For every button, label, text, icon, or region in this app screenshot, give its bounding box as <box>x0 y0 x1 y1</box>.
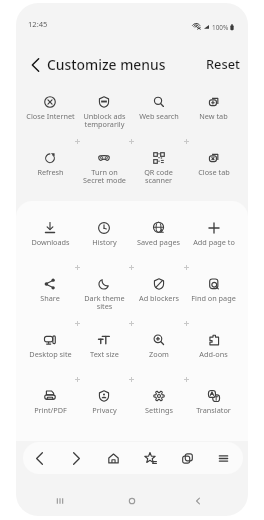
staticText: 12:45 <box>28 19 48 29</box>
staticText: QR code scanner <box>144 167 173 185</box>
button[interactable]: Settings <box>131 383 186 439</box>
staticText: Privacy <box>92 405 117 415</box>
button[interactable]: Find on page <box>186 271 241 327</box>
staticText: Downloads <box>31 237 70 247</box>
staticText: Saved pages <box>137 237 180 247</box>
staticText: Share <box>40 293 60 303</box>
button[interactable]: Downloads <box>23 215 77 271</box>
button[interactable]: Ad blockers <box>131 271 186 327</box>
staticText: Text size <box>90 349 119 359</box>
staticText: Reset <box>206 55 240 72</box>
button[interactable]: Add page to <box>186 215 241 271</box>
button[interactable]: Zoom <box>131 327 186 383</box>
button[interactable]: Saved pages <box>131 215 186 271</box>
staticText: Refresh <box>37 167 64 177</box>
button[interactable]: Web search <box>131 89 186 145</box>
button[interactable]: History <box>77 215 131 271</box>
staticText: Unblock ads temporarily <box>83 111 126 129</box>
staticText: 100% <box>212 23 229 32</box>
staticText: Find on page <box>191 293 236 303</box>
button[interactable]: New tab <box>186 89 241 145</box>
button[interactable]: Add-ons <box>186 327 241 383</box>
staticText: Customize menus <box>47 55 166 74</box>
button[interactable]: Unblock ads temporarily <box>77 89 131 145</box>
button[interactable]: Dark theme sites <box>77 271 131 327</box>
button[interactable]: Privacy <box>77 383 131 439</box>
staticText: Print/PDF <box>34 405 67 415</box>
button[interactable]: QR code scanner <box>131 145 186 201</box>
staticText: New tab <box>199 111 228 121</box>
button[interactable]: Print/PDF <box>23 383 77 439</box>
staticText: Settings <box>145 405 173 415</box>
button[interactable]: Text size <box>77 327 131 383</box>
staticText: Web search <box>139 111 179 121</box>
staticText: Zoom <box>149 349 169 359</box>
button[interactable]: Bookmarks <box>133 442 167 474</box>
staticText: History <box>92 237 117 247</box>
button[interactable]: Refresh <box>23 145 77 201</box>
button[interactable]: Tabs <box>170 442 204 474</box>
button[interactable]: Back <box>23 442 56 474</box>
button[interactable]: Reset <box>198 50 248 77</box>
staticText: Dark theme sites <box>84 293 125 311</box>
button[interactable]: Forward <box>59 442 93 474</box>
staticText: Add-ons <box>199 349 228 359</box>
staticText: Ad blockers <box>139 293 179 303</box>
button[interactable]: Menu <box>206 442 240 474</box>
staticText: Add page to <box>193 237 235 247</box>
staticText: Close tab <box>198 167 230 177</box>
staticText: Desktop site <box>29 349 72 359</box>
button[interactable]: Home <box>96 442 130 474</box>
staticText: Translator <box>196 405 231 415</box>
button[interactable]: Share <box>23 271 77 327</box>
button[interactable]: Navigate up <box>21 51 49 79</box>
staticText: Turn on Secret mode <box>83 167 126 185</box>
button[interactable]: Desktop site <box>23 327 77 383</box>
button[interactable]: Close Internet <box>23 89 77 145</box>
button[interactable]: Close tab <box>186 145 241 201</box>
staticText: Close Internet <box>26 111 75 121</box>
button[interactable]: Turn on Secret mode <box>77 145 131 201</box>
button[interactable]: Translator <box>186 383 241 439</box>
